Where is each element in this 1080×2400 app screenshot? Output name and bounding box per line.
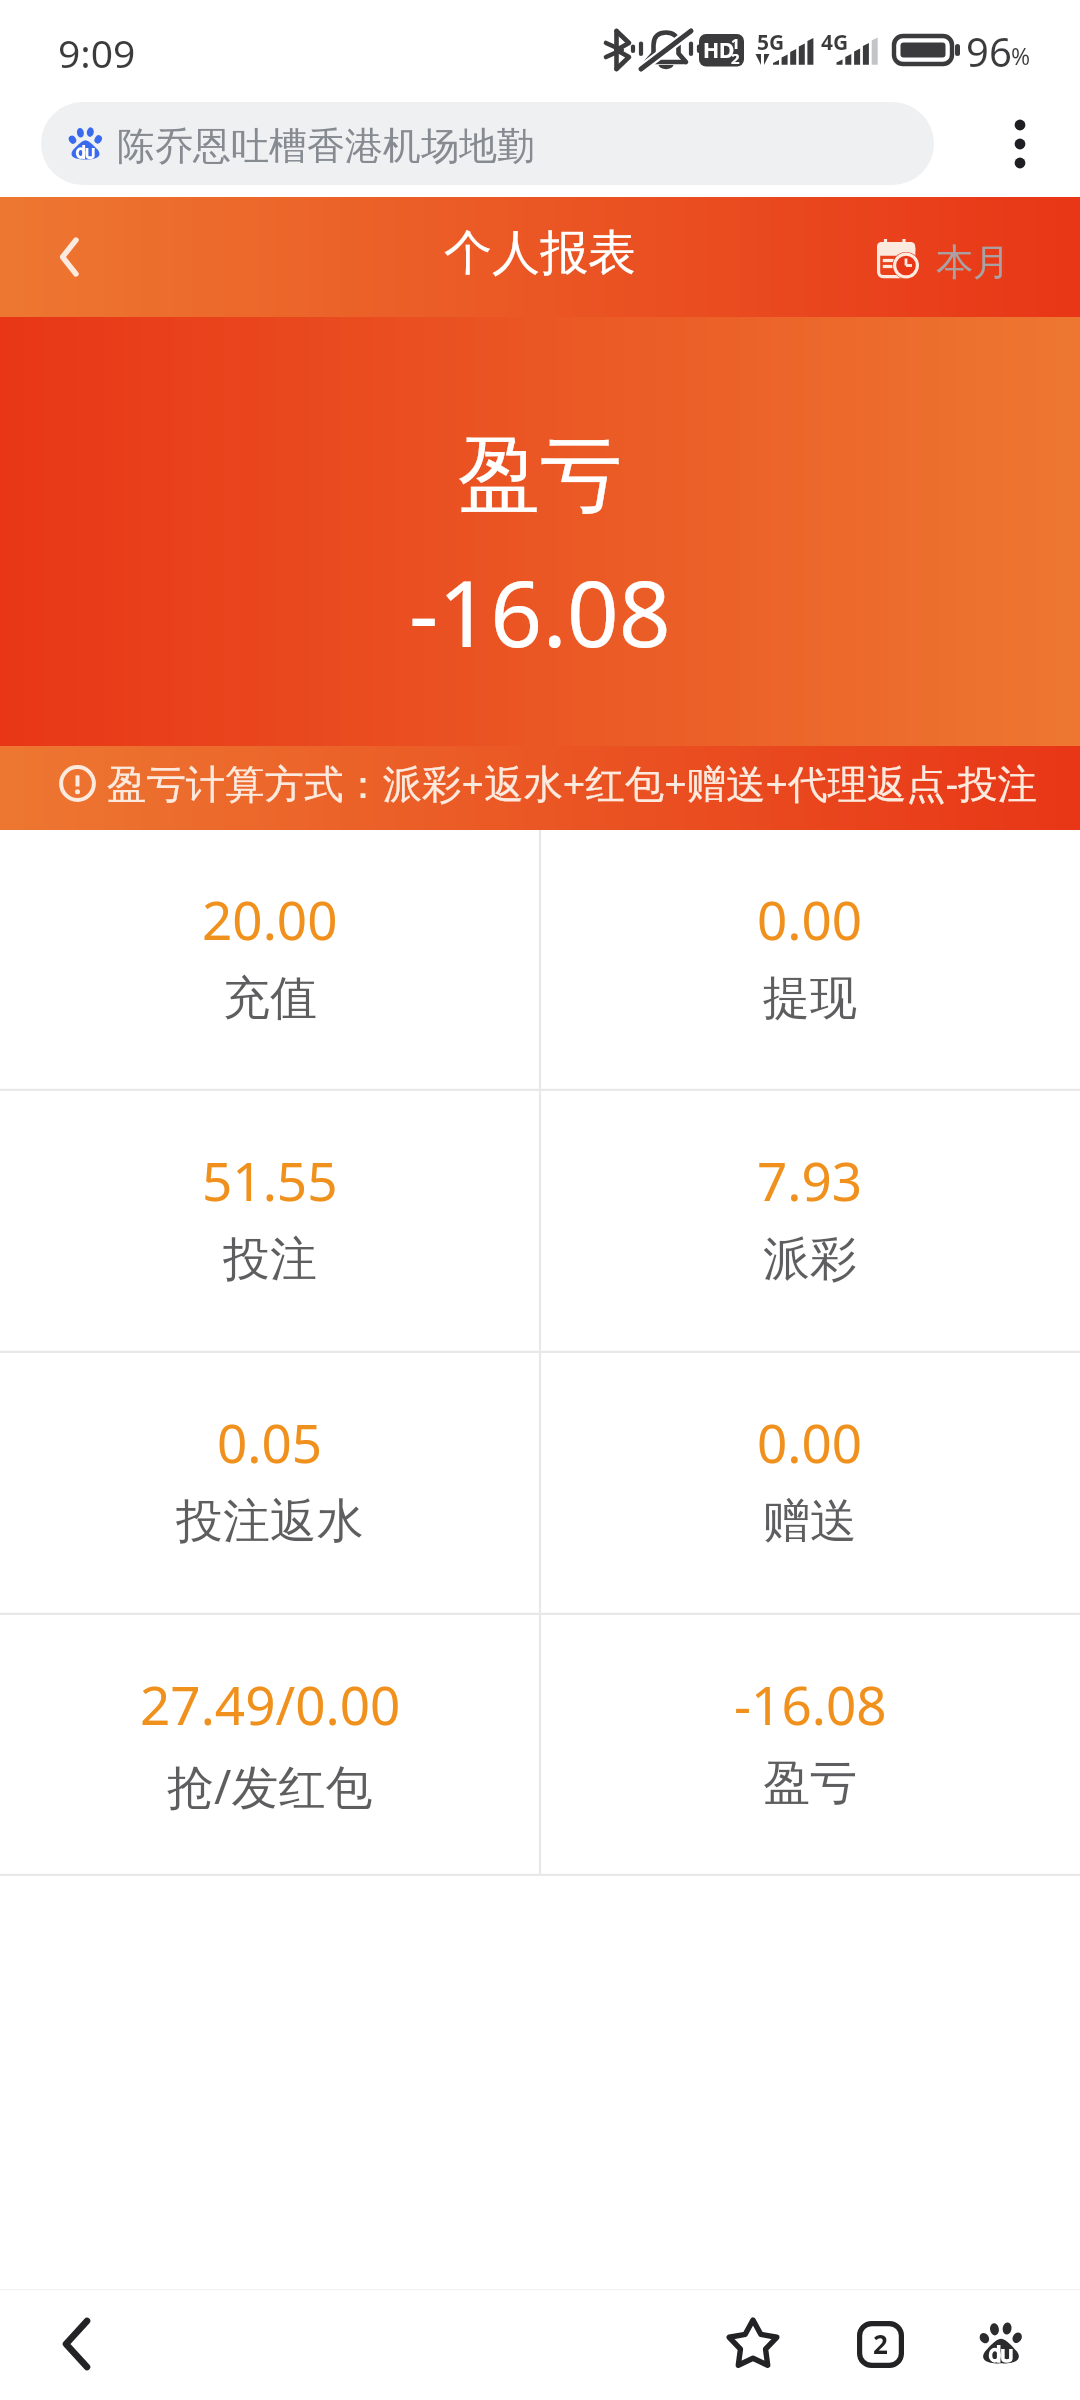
staticText: -16.08 <box>409 550 671 674</box>
staticText: 4G <box>821 28 849 57</box>
staticText: 投注返水 <box>176 1492 364 1551</box>
staticText: 抢/发红包 <box>167 1754 373 1818</box>
button[interactable]: 0.00 <box>540 1353 1080 1615</box>
staticText: 陈乔恩吐槽香港机场地勤 <box>117 122 535 170</box>
staticText: 0.05 <box>217 1406 323 1478</box>
button[interactable]: 0.00 <box>540 830 1080 1091</box>
button[interactable]: Back <box>0 2289 150 2400</box>
staticText: -16.08 <box>734 1668 887 1740</box>
staticText: 20.00 <box>202 883 338 955</box>
button[interactable]: 7.93 <box>540 1091 1080 1353</box>
staticText: 9:09 <box>58 26 136 79</box>
button[interactable]: Baidu home <box>950 2289 1052 2400</box>
staticText: HD <box>703 36 735 65</box>
staticText: 本月 <box>936 239 1010 286</box>
staticText: 96 <box>966 24 1012 78</box>
button[interactable]: -16.08 <box>540 1615 1080 1876</box>
staticText: 盈亏 <box>458 424 622 527</box>
button[interactable]: 20.00 <box>0 830 540 1091</box>
staticText: 5G <box>757 28 785 57</box>
button[interactable]: Back <box>0 197 140 317</box>
staticText: % <box>1011 40 1031 71</box>
staticText: 0.00 <box>757 883 863 955</box>
staticText: 盈亏计算方式：派彩+返水+红包+赠送+代理返点-投注 <box>107 756 1038 810</box>
staticText: 0.00 <box>757 1406 863 1478</box>
staticText: 2 <box>873 2326 888 2361</box>
staticText: 7.93 <box>757 1144 863 1216</box>
staticText: 派彩 <box>763 1230 857 1289</box>
button[interactable]: 0.05 <box>0 1353 540 1615</box>
button[interactable]: 27.49/0.00 <box>0 1615 540 1876</box>
staticText: 2 <box>731 48 740 68</box>
button[interactable]: Bookmarks <box>700 2289 806 2400</box>
staticText: 27.49/0.00 <box>140 1668 401 1740</box>
staticText: 赠送 <box>763 1492 857 1551</box>
button[interactable]: 本月 <box>877 234 1010 281</box>
staticText: 个人报表 <box>444 223 636 283</box>
staticText: 盈亏 <box>763 1754 857 1813</box>
staticText: 1 <box>731 33 740 53</box>
button[interactable]: 陈乔恩吐槽香港机场地勤 <box>41 102 934 185</box>
staticText: 51.55 <box>202 1144 338 1216</box>
button[interactable]: More options <box>989 96 1051 197</box>
staticText: 提现 <box>763 969 857 1028</box>
staticText: 充值 <box>223 969 317 1028</box>
staticText: 投注 <box>223 1230 317 1289</box>
button[interactable]: Tabs, 2 open <box>830 2289 931 2400</box>
button[interactable]: 51.55 <box>0 1091 540 1353</box>
